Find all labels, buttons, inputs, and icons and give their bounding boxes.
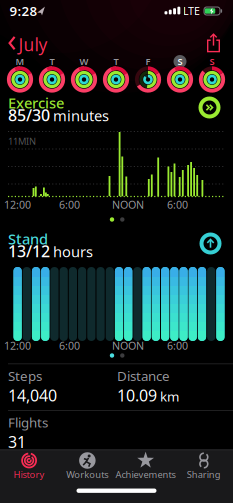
button[interactable]: History: [0, 450, 58, 483]
staticText: 13/12: [8, 240, 50, 262]
staticText: M: [15, 55, 24, 68]
button[interactable]: Sunday: [198, 65, 226, 93]
button[interactable]: Stand details: [198, 231, 222, 255]
staticText: 31: [8, 431, 26, 452]
staticText: F: [145, 55, 150, 68]
staticText: hours: [53, 242, 93, 261]
staticText: T: [49, 55, 54, 68]
staticText: km: [160, 387, 179, 405]
staticText: NOON: [112, 197, 144, 212]
staticText: 6:00: [59, 338, 80, 353]
staticText: NOON: [112, 338, 144, 353]
button[interactable]: Sharing: [175, 450, 233, 483]
button[interactable]: Monday: [6, 65, 34, 93]
staticText: Steps: [8, 367, 42, 385]
staticText: Exercise: [8, 93, 64, 112]
staticText: S: [177, 55, 182, 68]
button[interactable]: Saturday: [166, 65, 194, 93]
staticText: minutes: [53, 106, 109, 125]
button[interactable]: Workouts: [58, 450, 116, 483]
staticText: Distance: [117, 367, 170, 385]
staticText: 11MIN: [8, 135, 36, 147]
staticText: 6:00: [167, 338, 188, 353]
staticText: Flights: [8, 413, 48, 431]
button[interactable]: Wednesday: [70, 65, 98, 93]
staticText: 14,040: [8, 385, 57, 406]
staticText: Stand: [8, 229, 48, 248]
staticText: 12:00: [4, 338, 31, 353]
button[interactable]: Exercise details: [197, 95, 221, 119]
staticText: Achievements: [116, 468, 176, 481]
staticText: 6:00: [167, 197, 188, 212]
staticText: T: [113, 55, 118, 68]
staticText: S: [209, 55, 214, 68]
staticText: History: [14, 468, 45, 481]
staticText: 6:00: [59, 197, 80, 212]
button[interactable]: Tuesday: [38, 65, 66, 93]
staticText: W: [79, 55, 88, 68]
button[interactable]: Achievements: [117, 450, 175, 483]
staticText: 12:00: [4, 197, 31, 212]
button[interactable]: Friday: [134, 65, 162, 93]
button[interactable]: Back, July: [8, 36, 48, 53]
button[interactable]: Thursday: [102, 65, 130, 93]
staticText: Workouts: [66, 468, 108, 481]
staticText: LTE: [183, 4, 200, 18]
staticText: 9:28: [9, 2, 37, 20]
button[interactable]: Share: [203, 32, 223, 54]
staticText: Sharing: [187, 468, 221, 481]
staticText: 85/30: [8, 104, 50, 126]
staticText: July: [18, 33, 47, 56]
staticText: 10.09: [117, 385, 157, 406]
